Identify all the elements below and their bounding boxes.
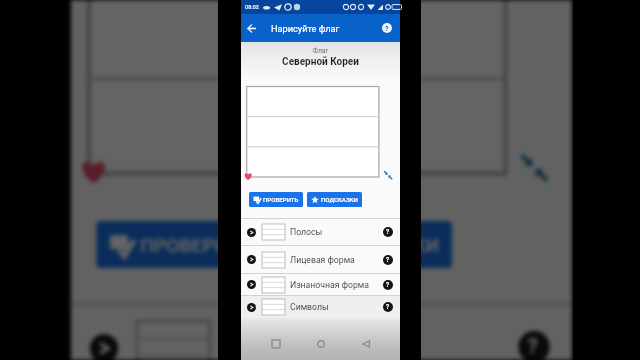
staticText: Полосы bbox=[225, 331, 329, 360]
staticText: Полосы bbox=[290, 227, 323, 237]
staticText: ? bbox=[386, 281, 390, 289]
button[interactable]: Help bbox=[383, 280, 393, 290]
button[interactable]: Изнаночная форма bbox=[241, 274, 400, 295]
staticText: Символы bbox=[290, 302, 329, 312]
button[interactable]: ПРОВЕРИТЬ bbox=[96, 221, 266, 268]
button[interactable]: Help bbox=[383, 227, 393, 237]
button[interactable]: Символы bbox=[241, 296, 400, 318]
button[interactable]: Help bbox=[383, 255, 393, 265]
staticText: Нарисуйте флаг bbox=[271, 23, 340, 34]
button[interactable]: Help bbox=[518, 331, 550, 360]
staticText: Лицевая форма bbox=[290, 255, 355, 265]
button[interactable]: ПРОВЕРИТЬ bbox=[249, 192, 303, 207]
button[interactable]: Полосы bbox=[241, 219, 400, 245]
button[interactable]: Back bbox=[241, 18, 261, 38]
button[interactable]: Back bbox=[357, 338, 375, 350]
button[interactable]: ПОДСКАЗКИ bbox=[279, 221, 452, 268]
staticText: Изнаночная форма bbox=[290, 280, 369, 290]
staticText: ПРОВЕРИТЬ bbox=[140, 233, 254, 255]
staticText: Флаг bbox=[241, 47, 400, 55]
button[interactable]: Полосы bbox=[71, 306, 572, 360]
staticText: ПОДСКАЗКИ bbox=[321, 196, 358, 203]
staticText: Северной Кореи bbox=[241, 56, 400, 68]
staticText: ? bbox=[528, 334, 540, 359]
button[interactable]: Help bbox=[376, 17, 398, 39]
staticText: ПРОВЕРИТЬ bbox=[263, 196, 299, 203]
staticText: ? bbox=[386, 303, 390, 311]
staticText: 08:02 bbox=[245, 4, 259, 10]
button[interactable]: Лицевая форма bbox=[241, 246, 400, 273]
staticText: ПОДСКАЗКИ bbox=[323, 233, 440, 255]
staticText: ? bbox=[386, 256, 390, 264]
staticText: ? bbox=[385, 24, 389, 32]
staticText: ? bbox=[386, 228, 390, 236]
button[interactable]: Home bbox=[312, 338, 330, 350]
button[interactable]: Recents bbox=[267, 338, 285, 350]
button[interactable]: Help bbox=[383, 302, 393, 312]
button[interactable]: ПОДСКАЗКИ bbox=[307, 192, 362, 207]
